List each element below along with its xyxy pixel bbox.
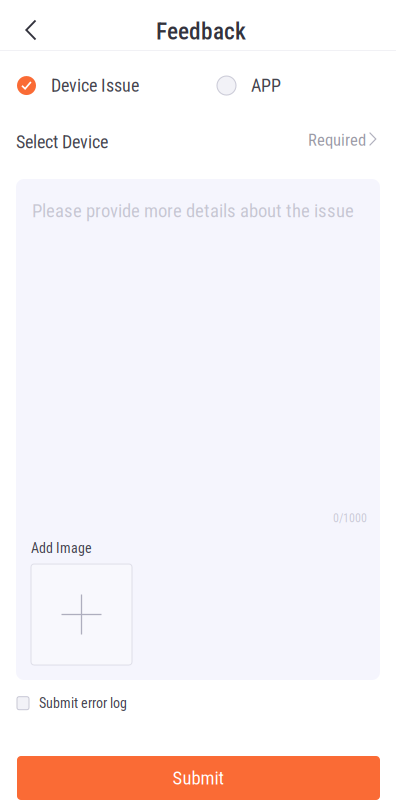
staticText: Feedback bbox=[156, 18, 246, 45]
staticText: Required bbox=[308, 130, 366, 150]
button[interactable]: Device Issue bbox=[17, 67, 139, 104]
staticText: Device Issue bbox=[51, 75, 139, 96]
staticText: Select Device bbox=[16, 131, 108, 153]
staticText: Add Image bbox=[31, 540, 92, 556]
staticText: Submit error log bbox=[39, 695, 127, 711]
button[interactable]: Submit bbox=[17, 756, 380, 800]
button[interactable]: Submit error log bbox=[15, 687, 129, 719]
staticText: APP bbox=[251, 75, 281, 96]
staticText: Submit bbox=[172, 767, 224, 789]
button[interactable]: APP bbox=[217, 67, 281, 104]
staticText: Please provide more details about the is… bbox=[32, 200, 354, 222]
button[interactable]: Back bbox=[9, 8, 53, 52]
button[interactable]: Select Device bbox=[0, 121, 396, 163]
staticText: 0/1000 bbox=[333, 511, 367, 525]
button[interactable]: Add Image bbox=[31, 564, 132, 665]
